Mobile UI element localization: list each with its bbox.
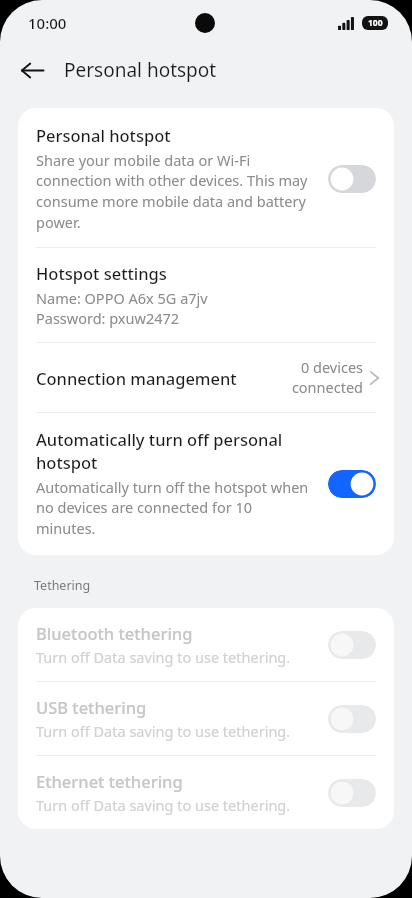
button[interactable]: Toggle on: [328, 470, 376, 498]
button[interactable]: Bluetooth tethering: [18, 608, 394, 681]
staticText: Automatically turn off the hotspot when …: [36, 477, 314, 539]
staticText: Turn off Data saving to use tethering.: [36, 795, 291, 815]
button[interactable]: Hotspot settings: [18, 248, 394, 342]
staticText: Password: pxuw2472: [36, 308, 180, 328]
staticText: Automatically turn off personal hotspot: [36, 428, 314, 474]
staticText: Personal hotspot: [64, 57, 217, 83]
staticText: Connection management: [36, 367, 261, 389]
staticText: Turn off Data saving to use tethering.: [36, 647, 291, 667]
button[interactable]: Personal hotspot: [18, 108, 394, 247]
button[interactable]: Toggle off: [328, 631, 376, 659]
staticText: 0 devices connected: [273, 357, 363, 398]
staticText: Name: OPPO A6x 5G a7jv: [36, 288, 208, 308]
button[interactable]: Toggle off: [328, 779, 376, 807]
button[interactable]: USB tethering: [18, 682, 394, 755]
staticText: Share your mobile data or Wi-Fi connecti…: [36, 150, 314, 233]
button[interactable]: Back: [10, 48, 54, 92]
button[interactable]: Toggle off: [328, 705, 376, 733]
button[interactable]: Ethernet tethering: [18, 756, 394, 829]
staticText: 10:00: [28, 13, 67, 33]
staticText: Personal hotspot: [36, 124, 171, 146]
staticText: Bluetooth tethering: [36, 622, 193, 644]
staticText: Ethernet tethering: [36, 770, 183, 792]
button[interactable]: Toggle off: [328, 165, 376, 193]
button[interactable]: Connection management: [18, 343, 394, 412]
staticText: 100: [368, 17, 383, 29]
staticText: Hotspot settings: [36, 262, 167, 284]
staticText: Turn off Data saving to use tethering.: [36, 721, 291, 741]
button[interactable]: Automatically turn off personal hotspot: [18, 413, 394, 555]
staticText: Tethering: [34, 577, 91, 594]
staticText: USB tethering: [36, 696, 147, 718]
